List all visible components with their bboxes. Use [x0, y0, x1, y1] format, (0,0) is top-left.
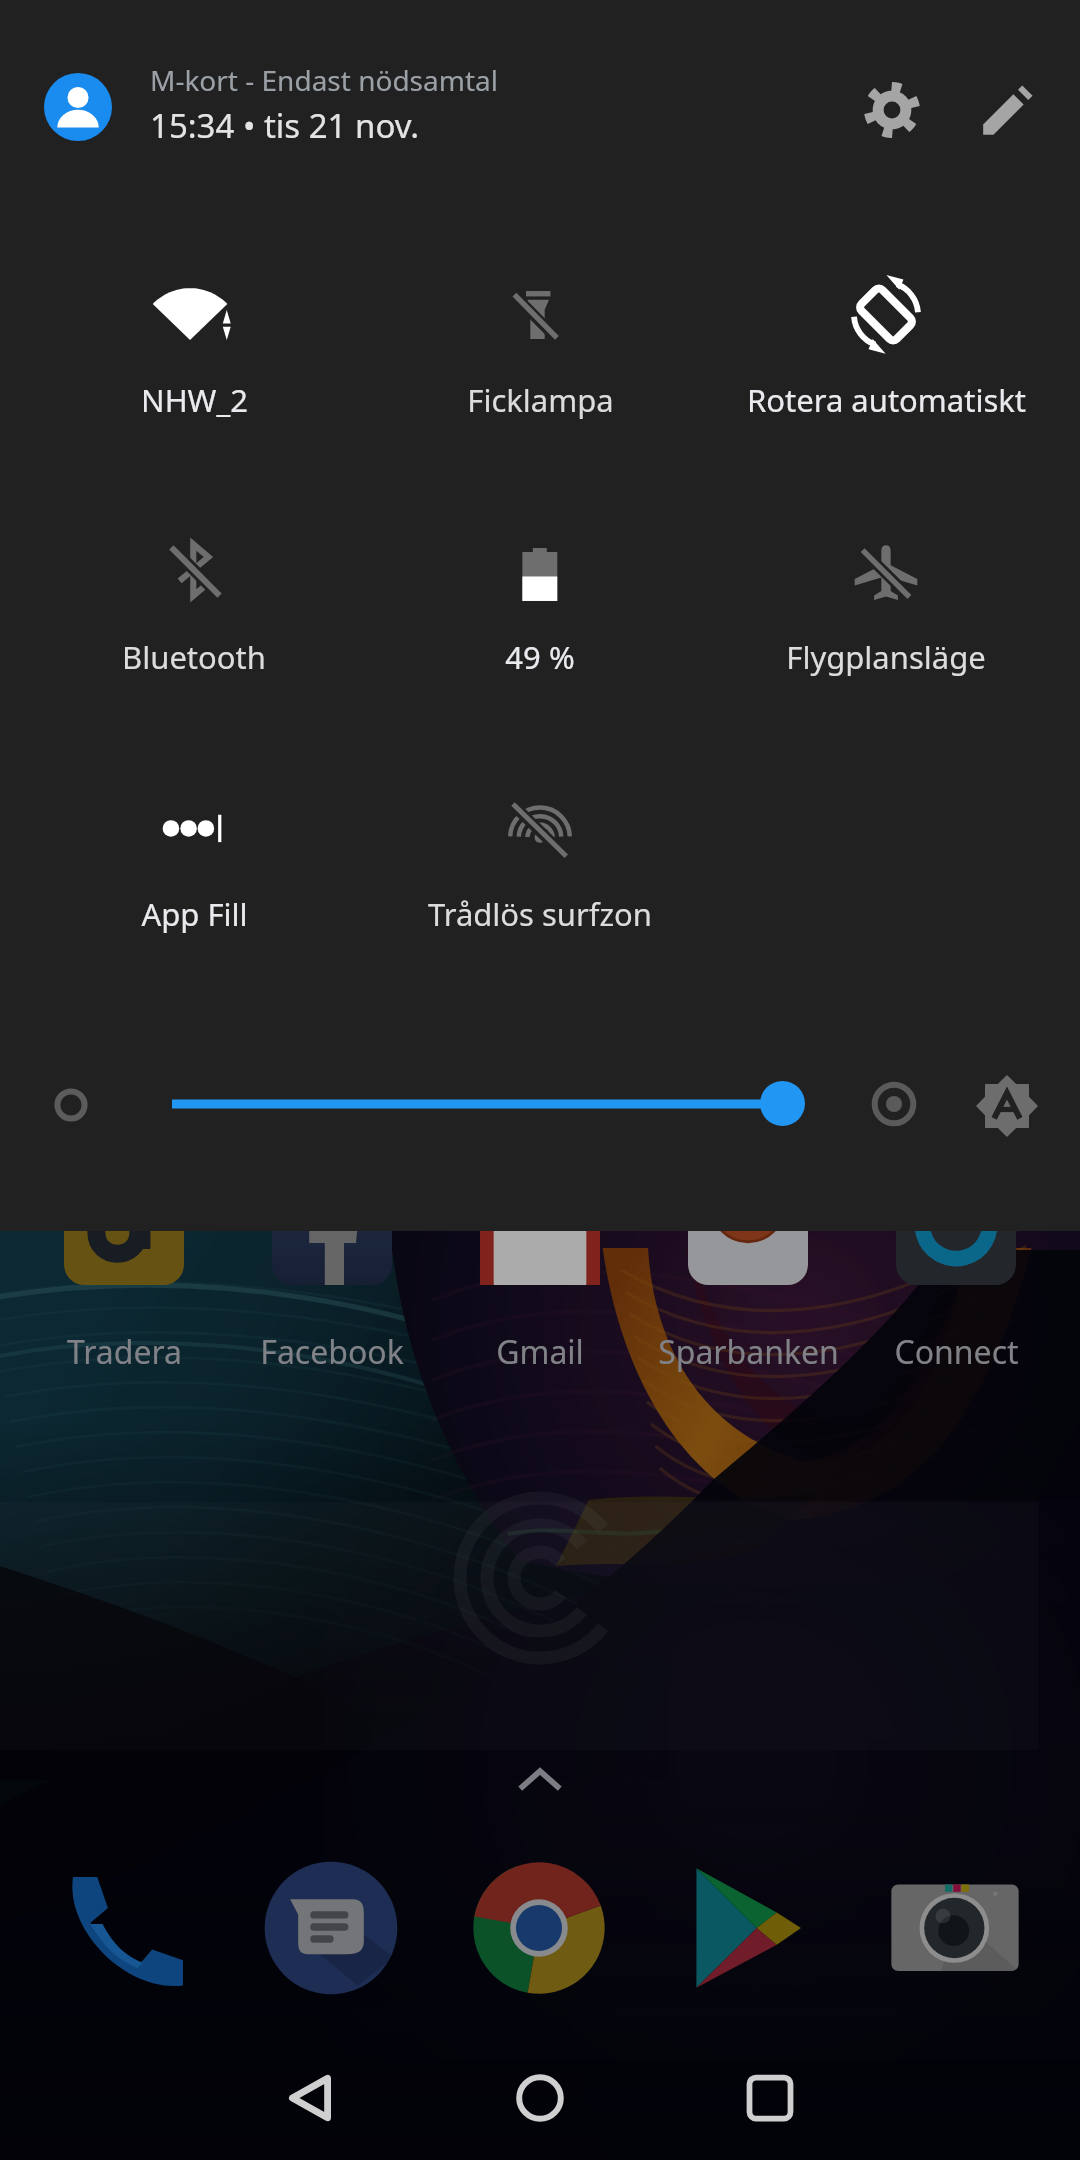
staticText: 15:34 • tis 21 nov.	[150, 103, 420, 148]
staticText: Flygplansläge	[786, 636, 986, 678]
staticText: Facebook	[260, 1330, 404, 1374]
staticText: 49 %	[505, 636, 575, 678]
button[interactable]: Ficklampa	[367, 213, 713, 413]
button[interactable]: 49 %	[367, 470, 713, 670]
button[interactable]: NHW_2	[21, 213, 367, 413]
button[interactable]: Auto brightness	[976, 1075, 1038, 1137]
button[interactable]: Tradera	[20, 1150, 228, 1370]
button[interactable]: Facebook	[228, 1150, 436, 1370]
button[interactable]: Connect	[852, 1150, 1060, 1370]
button[interactable]: Rotera automatiskt	[713, 213, 1059, 413]
staticText: Connect	[894, 1330, 1019, 1374]
button[interactable]: All apps	[500, 1745, 580, 1825]
button[interactable]: Settings	[848, 66, 936, 154]
staticText: Gmail	[496, 1330, 584, 1374]
button[interactable]: App Fill	[21, 727, 367, 927]
staticText: Sparbanken	[658, 1330, 839, 1374]
button[interactable]: Edit	[964, 66, 1052, 154]
button[interactable]: Gmail	[436, 1150, 644, 1370]
button[interactable]: Back	[250, 2038, 370, 2158]
button[interactable]: Camera	[871, 1844, 1039, 2012]
button[interactable]: Flygplansläge	[713, 470, 1059, 670]
button[interactable]: Sparbanken	[644, 1150, 852, 1370]
button[interactable]: Account	[44, 73, 112, 141]
button[interactable]: Bluetooth	[21, 470, 367, 670]
staticText: M-kort - Endast nödsamtal	[150, 61, 498, 99]
staticText: App Fill	[141, 893, 248, 935]
staticText: Rotera automatiskt	[747, 379, 1026, 421]
button[interactable]: Recents	[710, 2038, 830, 2158]
button[interactable]: Messages	[247, 1844, 415, 2012]
staticText: NHW_2	[141, 379, 248, 421]
button[interactable]: Trådlös surfzon	[367, 727, 713, 927]
button[interactable]: Play Store	[664, 1844, 832, 2012]
button[interactable]: Phone	[40, 1844, 208, 2012]
button[interactable]: Home	[480, 2038, 600, 2158]
staticText: Ficklampa	[467, 379, 614, 421]
staticText: Tradera	[67, 1330, 182, 1374]
staticText: Trådlös surfzon	[428, 893, 652, 935]
staticText: Bluetooth	[122, 636, 266, 678]
button[interactable]: Chrome	[455, 1844, 623, 2012]
